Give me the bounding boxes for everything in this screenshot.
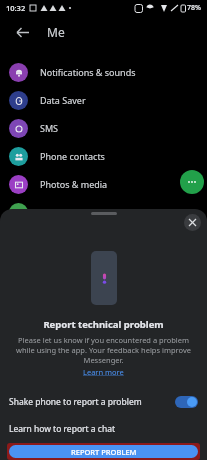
staticText: Please let us know if you encountered a … [12,335,195,365]
button[interactable] [0,198,207,226]
staticText: Learn more [83,367,124,377]
staticText: Report technical problem [43,318,164,331]
staticText: Me [47,24,65,40]
staticText: 10:32 [6,3,26,13]
button[interactable]: Learn more [79,366,128,378]
button[interactable]: Learn how to report a chat [0,420,207,438]
button[interactable]: Photos & media [0,170,207,198]
staticText: Photos & media [40,178,108,190]
button[interactable]: Close [184,214,201,231]
button[interactable]: Back [10,20,34,44]
button[interactable]: REPORT PROBLEM [9,445,198,458]
staticText: Phone contacts [40,150,105,162]
staticText: 78% [187,3,201,13]
staticText: Learn how to report a chat [9,423,115,435]
button[interactable]: Notifications & sounds [0,58,207,86]
button[interactable]: Phone contacts [0,142,207,170]
button[interactable]: More [180,170,204,194]
staticText: Shake phone to report a problem [9,396,142,408]
staticText: Data Saver [40,94,86,106]
button[interactable]: SMS [0,114,207,142]
staticText: REPORT PROBLEM [71,447,137,457]
button[interactable]: Data Saver [0,86,207,114]
staticText: SMS [40,122,59,134]
staticText: Notifications & sounds [40,66,136,78]
button[interactable]: Shake phone to report a problem [0,390,207,414]
